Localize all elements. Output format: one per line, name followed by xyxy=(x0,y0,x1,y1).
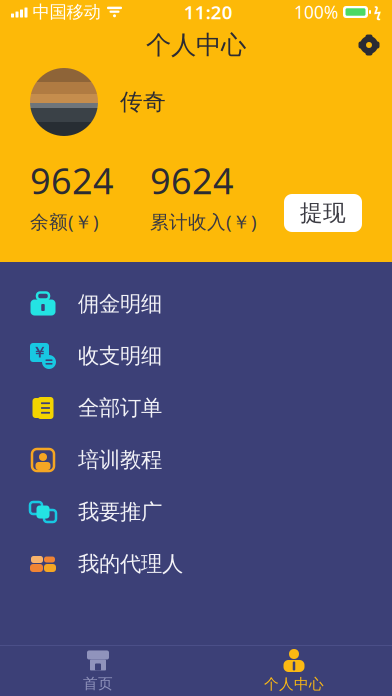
staticText: 我的代理人 xyxy=(78,551,183,577)
button[interactable]: 个人中心 xyxy=(196,646,392,696)
staticText: 提现 xyxy=(300,199,346,227)
staticText: 中国移动 xyxy=(32,1,100,23)
button[interactable]: 首页 xyxy=(0,646,196,696)
button[interactable]: 提现 xyxy=(284,194,362,232)
staticText: 传奇 xyxy=(120,88,166,116)
button[interactable]: ￥ xyxy=(0,330,392,382)
staticText: 11:20 xyxy=(184,0,233,24)
staticText: 佣金明细 xyxy=(78,291,162,317)
staticText: 个人中心 xyxy=(146,29,246,60)
button[interactable]: 我的代理人 xyxy=(0,538,392,590)
staticText: ϟ xyxy=(374,3,381,21)
staticText: 我要推广 xyxy=(78,499,162,525)
staticText: 9624 xyxy=(30,156,114,204)
staticText: 个人中心 xyxy=(264,675,324,693)
staticText: 100% xyxy=(294,0,338,23)
button[interactable]: 我要推广 xyxy=(0,486,392,538)
staticText: 培训教程 xyxy=(78,447,162,473)
staticText: 首页 xyxy=(83,674,113,692)
staticText: 9624 xyxy=(150,156,234,204)
staticText: 累计收入(￥) xyxy=(150,209,257,234)
button[interactable]: 佣金明细 xyxy=(0,278,392,330)
staticText: ￥ xyxy=(32,343,47,361)
button[interactable]: 全部订单 xyxy=(0,382,392,434)
button[interactable]: Settings xyxy=(346,25,392,65)
staticText: 收支明细 xyxy=(78,343,162,369)
staticText: 全部订单 xyxy=(78,395,162,421)
button[interactable]: 培训教程 xyxy=(0,434,392,486)
staticText: 余额(￥) xyxy=(30,209,99,234)
